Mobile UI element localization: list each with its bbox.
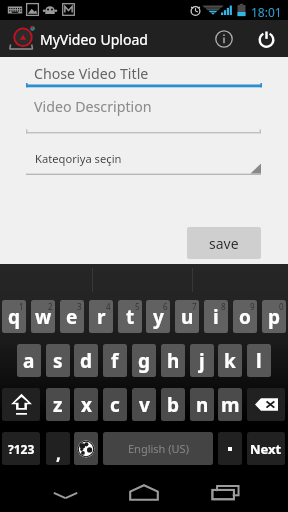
staticText: l xyxy=(256,348,262,374)
button[interactable]: English (US) xyxy=(103,432,213,465)
button[interactable]: Shift xyxy=(2,388,40,421)
staticText: 1 xyxy=(19,301,24,312)
button[interactable]: n xyxy=(190,388,214,421)
button[interactable]: b xyxy=(161,388,185,421)
button[interactable]: p xyxy=(262,300,286,333)
staticText: 18:01 xyxy=(251,4,282,20)
button[interactable]: k xyxy=(218,344,242,377)
button[interactable]: q xyxy=(2,300,26,333)
staticText: y xyxy=(153,304,164,330)
button[interactable]: s xyxy=(46,344,70,377)
button[interactable]: u xyxy=(175,300,199,333)
button[interactable]: t xyxy=(118,300,142,333)
staticText: 0 xyxy=(279,301,284,312)
button[interactable]: r xyxy=(89,300,113,333)
button[interactable]: f xyxy=(103,344,127,377)
button[interactable]: m xyxy=(218,388,242,421)
button[interactable]: g xyxy=(132,344,156,377)
staticText: Next xyxy=(250,440,282,458)
staticText: t xyxy=(126,304,135,330)
staticText: 4 xyxy=(106,301,111,312)
staticText: p xyxy=(268,304,281,330)
button[interactable]: a xyxy=(17,344,41,377)
button[interactable]: Next xyxy=(247,432,285,465)
staticText: English (US) xyxy=(128,441,189,456)
staticText: ?123 xyxy=(8,441,35,457)
button[interactable]: w xyxy=(31,300,55,333)
button[interactable]: o xyxy=(233,300,257,333)
staticText: 7 xyxy=(192,301,197,312)
button[interactable]: d xyxy=(74,344,98,377)
staticText: w xyxy=(35,304,52,330)
staticText: a xyxy=(23,348,35,374)
button[interactable]: c xyxy=(103,388,127,421)
button[interactable]: y xyxy=(146,300,170,333)
button[interactable]: v xyxy=(132,388,156,421)
staticText: b xyxy=(167,392,180,418)
staticText: j xyxy=(199,348,205,374)
button[interactable]: l xyxy=(247,344,271,377)
button[interactable]: Language xyxy=(74,432,98,465)
button[interactable]: h xyxy=(161,344,185,377)
staticText: o xyxy=(239,304,251,330)
button[interactable]: Home xyxy=(119,470,169,512)
staticText: f xyxy=(111,348,119,374)
staticText: 3 xyxy=(77,301,82,312)
staticText: 9 xyxy=(250,301,255,312)
staticText: Chose Video Title xyxy=(34,64,149,83)
staticText: k xyxy=(224,348,236,374)
staticText: MyVideo Upload xyxy=(40,30,148,49)
staticText: h xyxy=(167,348,180,374)
button[interactable]: Recents xyxy=(200,470,250,512)
staticText: r xyxy=(97,304,106,330)
button[interactable]: Comma xyxy=(46,432,70,465)
button[interactable]: e xyxy=(60,300,84,333)
staticText: m xyxy=(221,392,240,418)
staticText: , xyxy=(56,442,61,465)
staticText: e xyxy=(66,304,78,330)
staticText: Kateqoriya seçin xyxy=(35,151,122,166)
staticText: i xyxy=(213,304,219,330)
staticText: x xyxy=(81,392,92,418)
staticText: g xyxy=(138,348,151,374)
button[interactable]: Backspace xyxy=(247,388,285,421)
button[interactable]: j xyxy=(190,344,214,377)
staticText: 8 xyxy=(221,301,226,312)
button[interactable]: Power xyxy=(246,20,286,57)
button[interactable]: x xyxy=(74,388,98,421)
staticText: z xyxy=(53,392,63,418)
button[interactable]: Period xyxy=(218,432,242,465)
button[interactable]: i xyxy=(204,300,228,333)
button[interactable]: Info xyxy=(204,20,244,57)
button[interactable]: save xyxy=(187,227,261,259)
staticText: save xyxy=(209,234,239,253)
button[interactable]: Symbols xyxy=(2,432,40,465)
staticText: 5 xyxy=(135,301,140,312)
staticText: 6 xyxy=(163,301,168,312)
staticText: d xyxy=(80,348,93,374)
staticText: v xyxy=(139,392,150,418)
staticText: c xyxy=(110,392,120,418)
staticText: 2 xyxy=(48,301,53,312)
staticText: Video Description xyxy=(34,97,152,116)
staticText: q xyxy=(8,304,21,330)
staticText: u xyxy=(181,304,194,330)
staticText: n xyxy=(196,392,209,418)
button[interactable]: Back xyxy=(40,470,90,512)
button[interactable]: z xyxy=(46,388,70,421)
staticText: s xyxy=(53,348,63,374)
